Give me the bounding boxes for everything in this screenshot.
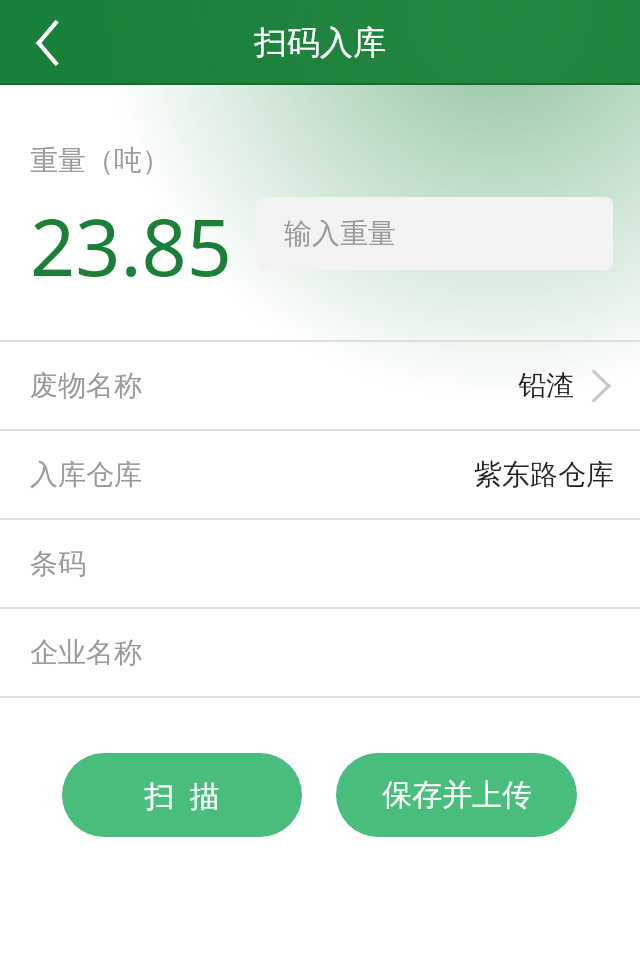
staticText: 扫码入库	[254, 22, 386, 64]
button[interactable]: 企业名称	[0, 609, 640, 696]
button[interactable]: 返回	[16, 12, 78, 74]
staticText: 条码	[30, 546, 86, 581]
staticText: 23.85	[30, 192, 232, 300]
staticText: 废物名称	[30, 368, 142, 403]
button[interactable]: 扫 描	[62, 753, 302, 837]
button[interactable]: 保存并上传	[336, 753, 577, 837]
staticText: 保存并上传	[382, 776, 532, 814]
button[interactable]: 输入重量	[256, 197, 613, 270]
button[interactable]: 废物名称	[0, 342, 640, 429]
staticText: 扫 描	[144, 775, 220, 816]
staticText: 输入重量	[284, 216, 396, 251]
staticText: 企业名称	[30, 635, 142, 670]
staticText: 铅渣	[518, 368, 574, 403]
staticText: 紫东路仓库	[474, 457, 614, 492]
staticText: 重量（吨）	[30, 143, 170, 178]
button[interactable]: 入库仓库	[0, 431, 640, 518]
button[interactable]: 条码	[0, 520, 640, 607]
staticText: 入库仓库	[30, 457, 142, 492]
